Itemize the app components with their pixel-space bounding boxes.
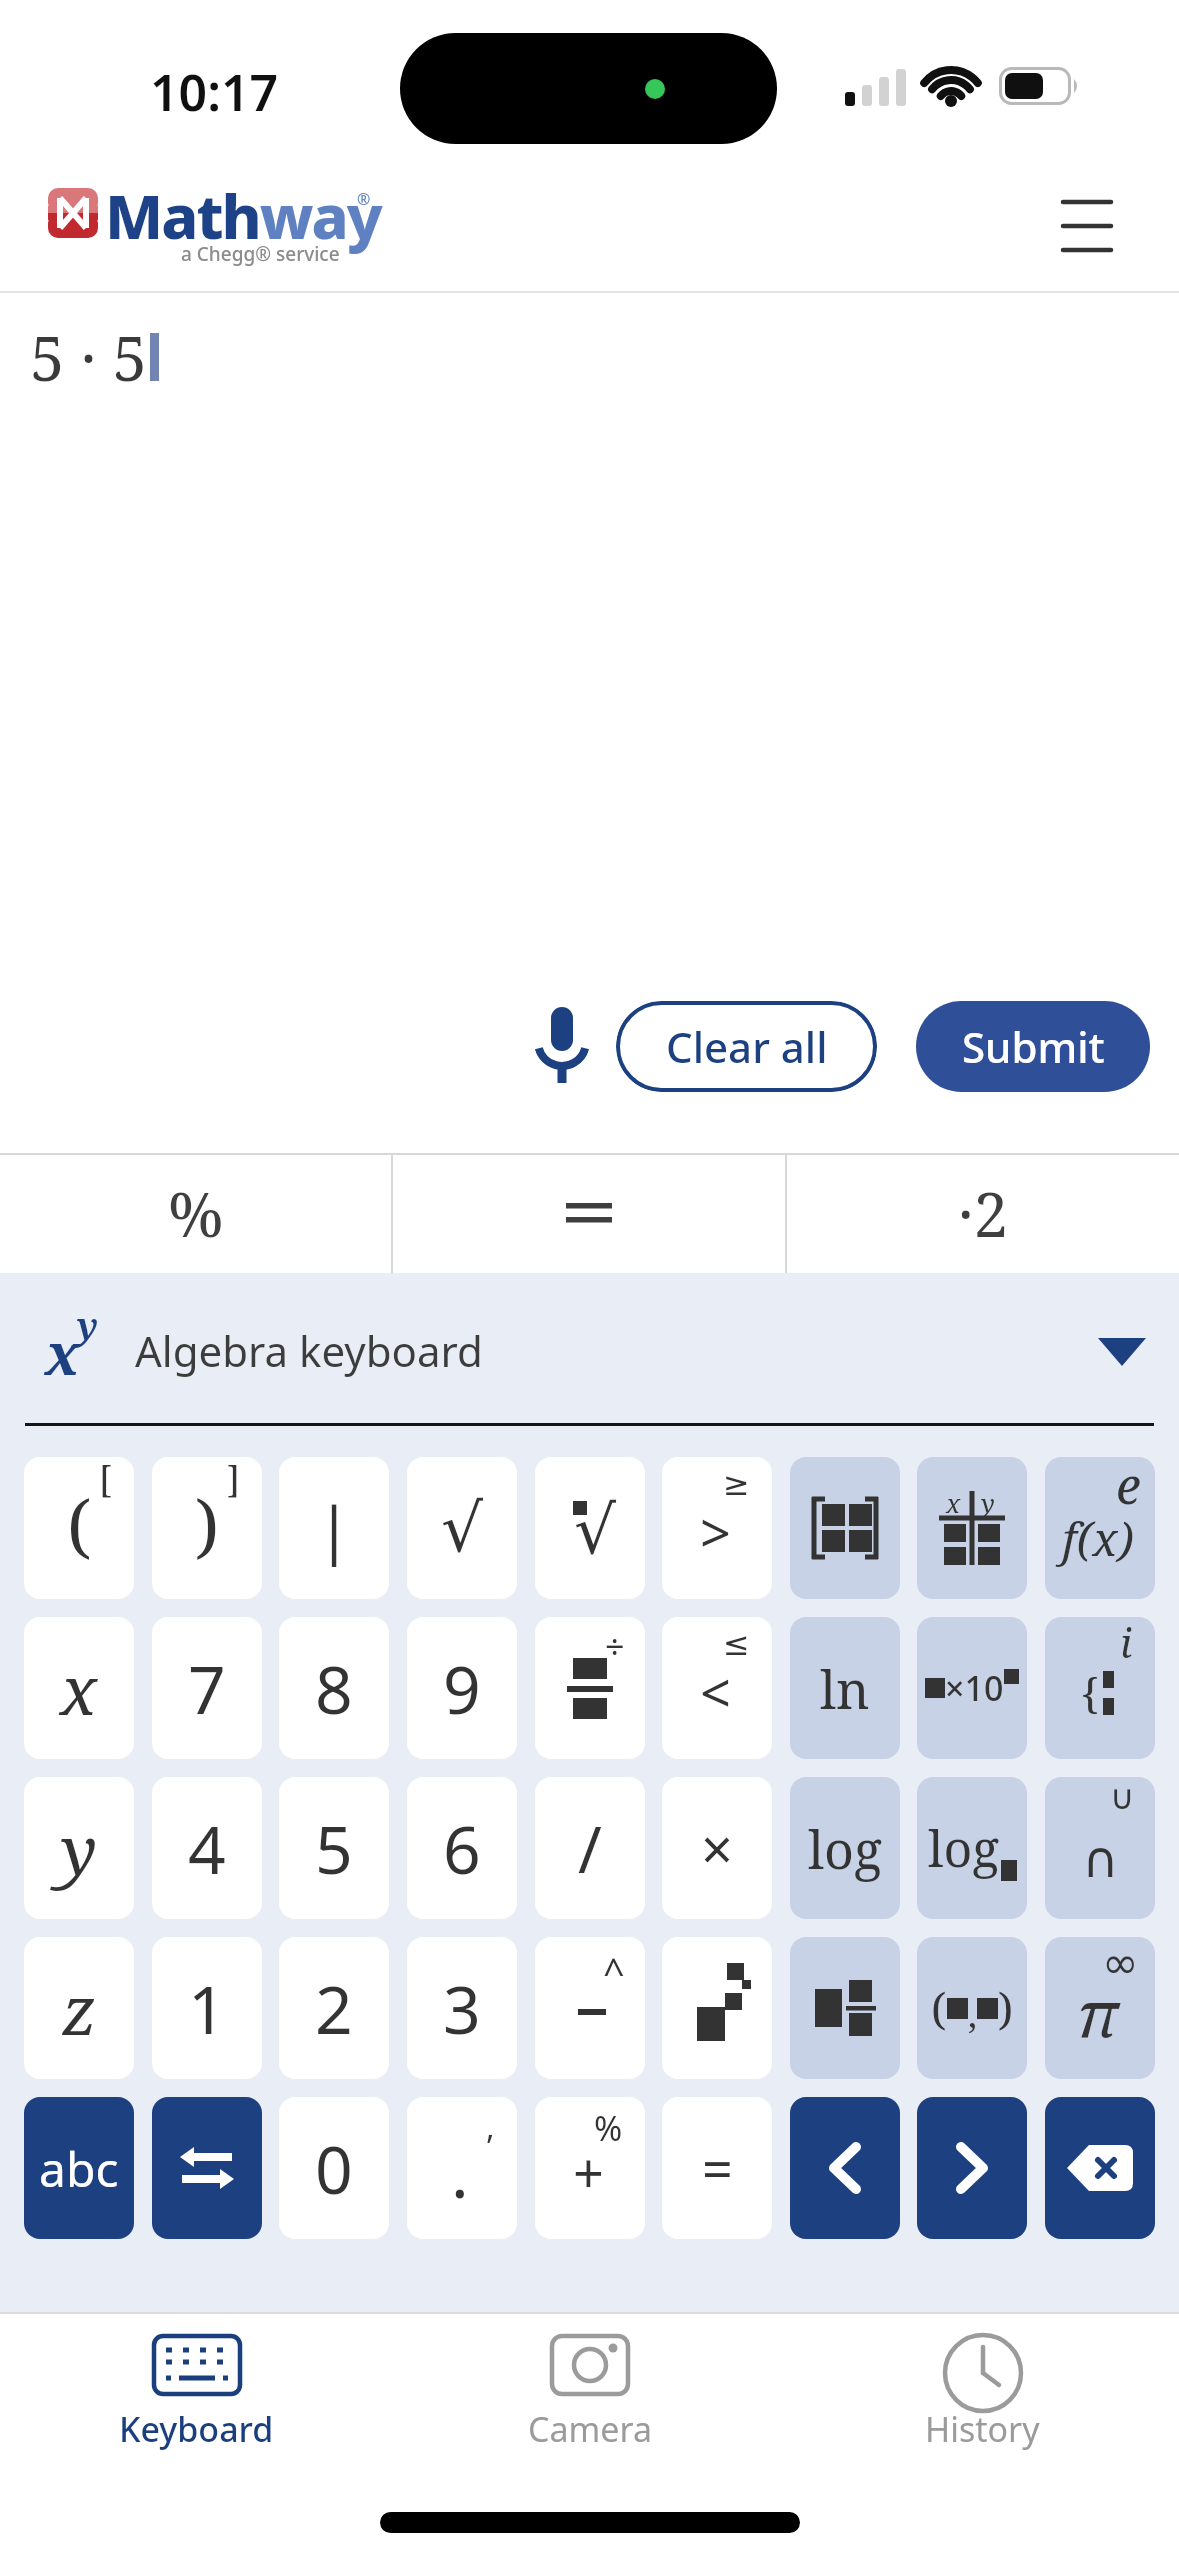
staticText: History bbox=[925, 2406, 1040, 2452]
staticText: 2 bbox=[315, 1963, 353, 2053]
button[interactable]: √ bbox=[407, 1457, 517, 1599]
button[interactable]: ÷ bbox=[535, 1617, 645, 1759]
button[interactable]: + bbox=[535, 2097, 645, 2239]
staticText: Algebra keyboard bbox=[135, 1322, 483, 1379]
staticText: Mathway bbox=[105, 174, 381, 257]
button[interactable] bbox=[152, 2097, 262, 2239]
button[interactable] bbox=[1098, 1338, 1146, 1366]
staticText: log bbox=[808, 1813, 883, 1884]
staticText: π bbox=[1077, 1969, 1119, 2056]
button[interactable]: History bbox=[786, 2314, 1179, 2474]
button[interactable] bbox=[790, 2097, 900, 2239]
staticText: i bbox=[1120, 1617, 1133, 1669]
button[interactable]: % bbox=[0, 1153, 391, 1273]
staticText: 9 bbox=[443, 1643, 481, 1733]
button[interactable] bbox=[393, 1153, 785, 1273]
button[interactable] bbox=[1045, 185, 1129, 269]
button[interactable]: / bbox=[535, 1777, 645, 1919]
button[interactable]: 6 bbox=[407, 1777, 517, 1919]
button[interactable]: log bbox=[917, 1777, 1027, 1919]
staticText: ∪ bbox=[1110, 1777, 1135, 1817]
button[interactable]: ×10 bbox=[917, 1617, 1027, 1759]
staticText: ) bbox=[195, 1476, 220, 1571]
button[interactable] bbox=[537, 1007, 589, 1087]
staticText: { bbox=[1081, 1664, 1099, 1721]
staticText: ) bbox=[998, 1978, 1014, 2038]
button[interactable] bbox=[662, 1937, 772, 2079]
button[interactable] bbox=[790, 1457, 900, 1599]
staticText: y bbox=[981, 1485, 995, 1520]
button[interactable]: < bbox=[662, 1617, 772, 1759]
button[interactable]: z bbox=[24, 1937, 134, 2079]
staticText: 3 bbox=[443, 1963, 481, 2053]
staticText: 5 bbox=[315, 1803, 353, 1893]
staticText: Submit bbox=[962, 1018, 1105, 1075]
staticText: × bbox=[701, 1810, 734, 1886]
button[interactable]: × bbox=[662, 1777, 772, 1919]
button[interactable]: y bbox=[24, 1777, 134, 1919]
staticText: x bbox=[45, 1313, 81, 1392]
button[interactable]: ( bbox=[24, 1457, 134, 1599]
staticText: log bbox=[928, 1814, 1000, 1882]
button[interactable]: { bbox=[1045, 1617, 1155, 1759]
button[interactable]: . bbox=[407, 2097, 517, 2239]
button[interactable]: 2 bbox=[279, 1937, 389, 2079]
button[interactable]: ^ bbox=[535, 1937, 645, 2079]
button[interactable]: 4 bbox=[152, 1777, 262, 1919]
staticText: , bbox=[486, 2105, 495, 2149]
button[interactable]: Submit bbox=[916, 1001, 1150, 1092]
staticText: ≥ bbox=[723, 1465, 750, 1502]
button[interactable]: x bbox=[917, 1457, 1027, 1599]
staticText: √ bbox=[441, 1490, 484, 1567]
button[interactable]: Keyboard bbox=[0, 2314, 393, 2474]
button[interactable]: 7 bbox=[152, 1617, 262, 1759]
staticText: 7 bbox=[188, 1643, 226, 1733]
button[interactable]: ∩ bbox=[1045, 1777, 1155, 1919]
button[interactable]: ( bbox=[917, 1937, 1027, 2079]
staticText: | bbox=[317, 1486, 352, 1570]
button[interactable]: x bbox=[24, 1617, 134, 1759]
button[interactable]: Clear all bbox=[616, 1001, 877, 1092]
button[interactable] bbox=[1045, 2097, 1155, 2239]
button[interactable]: = bbox=[662, 2097, 772, 2239]
button[interactable]: ln bbox=[790, 1617, 900, 1759]
button[interactable]: ) bbox=[152, 1457, 262, 1599]
button[interactable]: f(x) bbox=[1045, 1457, 1155, 1599]
staticText: = bbox=[702, 2131, 733, 2205]
staticText: > bbox=[700, 1495, 731, 1569]
button[interactable] bbox=[917, 2097, 1027, 2239]
staticText: 5 · 5 bbox=[30, 315, 148, 399]
staticText: + bbox=[573, 2135, 604, 2209]
staticText: ×10 bbox=[945, 1665, 1004, 1711]
button[interactable]: Camera bbox=[393, 2314, 786, 2474]
button[interactable]: 3 bbox=[407, 1937, 517, 2079]
staticText: ( bbox=[67, 1476, 92, 1571]
staticText: [ bbox=[99, 1457, 112, 1504]
button[interactable]: ·2 bbox=[787, 1153, 1179, 1273]
button[interactable]: √ bbox=[535, 1457, 645, 1599]
button[interactable]: 5 bbox=[279, 1777, 389, 1919]
staticText: % bbox=[168, 1171, 224, 1255]
staticText: 10:17 bbox=[150, 58, 279, 126]
staticText: ln bbox=[820, 1653, 870, 1724]
button[interactable]: 1 bbox=[152, 1937, 262, 2079]
button[interactable]: | bbox=[279, 1457, 389, 1599]
staticText: ] bbox=[227, 1457, 240, 1504]
button[interactable] bbox=[790, 1937, 900, 2079]
staticText: Clear all bbox=[666, 1018, 828, 1075]
button[interactable]: > bbox=[662, 1457, 772, 1599]
staticText: ·2 bbox=[958, 1171, 1009, 1255]
button[interactable]: π bbox=[1045, 1937, 1155, 2079]
button[interactable]: abc bbox=[24, 2097, 134, 2239]
staticText: 1 bbox=[188, 1963, 226, 2053]
staticText: x bbox=[60, 1642, 98, 1735]
button[interactable]: 8 bbox=[279, 1617, 389, 1759]
button[interactable]: log bbox=[790, 1777, 900, 1919]
staticText: Camera bbox=[528, 2406, 652, 2452]
button[interactable]: 9 bbox=[407, 1617, 517, 1759]
button[interactable]: 0 bbox=[279, 2097, 389, 2239]
staticText: z bbox=[62, 1962, 97, 2055]
staticText: < bbox=[700, 1655, 731, 1729]
staticText: abc bbox=[39, 2136, 119, 2201]
staticText: ∩ bbox=[1082, 1831, 1119, 1889]
